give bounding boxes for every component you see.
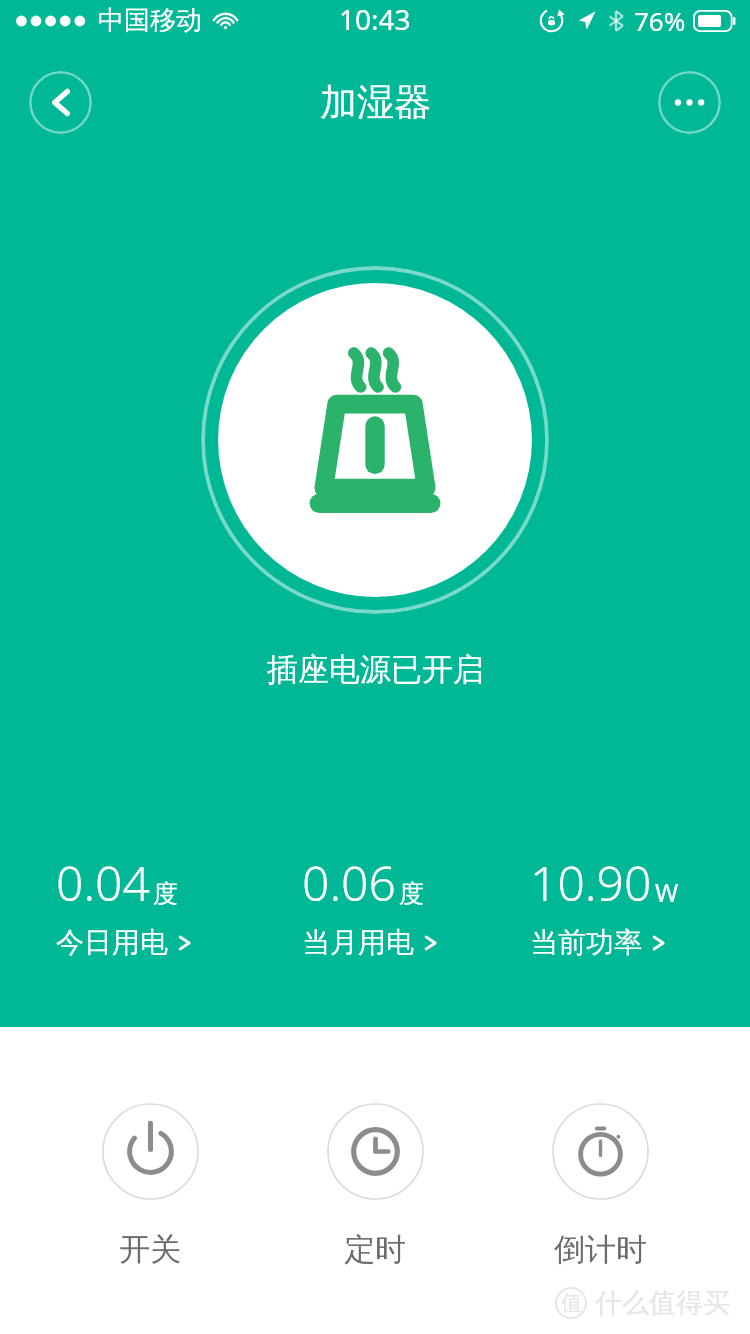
- staticText: W: [655, 875, 679, 909]
- staticText: 倒计时: [554, 1230, 647, 1269]
- button[interactable]: Humidifier power toggle: [201, 266, 549, 614]
- button[interactable]: Back: [29, 71, 92, 134]
- staticText: 10.90: [530, 850, 652, 915]
- staticText: 0.04: [56, 850, 150, 915]
- staticText: 定时: [344, 1230, 406, 1269]
- button[interactable]: 0.06: [250, 850, 500, 960]
- button[interactable]: More options: [658, 71, 721, 134]
- staticText: 0.06: [302, 850, 396, 915]
- button[interactable]: 10.90: [500, 850, 750, 960]
- staticText: 开关: [119, 1230, 181, 1269]
- staticText: 值: [561, 1290, 582, 1316]
- button[interactable]: 0.04: [0, 850, 250, 960]
- staticText: 加湿器: [320, 79, 431, 126]
- staticText: 度: [399, 878, 424, 909]
- staticText: 76%: [634, 3, 686, 38]
- staticText: 10:43: [339, 0, 411, 38]
- staticText: 当月用电: [302, 925, 414, 960]
- staticText: 今日用电: [56, 925, 168, 960]
- staticText: 什么值得买: [595, 1286, 730, 1320]
- button[interactable]: Power: [75, 1103, 225, 1269]
- staticText: 度: [153, 878, 178, 909]
- staticText: 插座电源已开启: [267, 650, 484, 689]
- button[interactable]: Schedule: [300, 1103, 450, 1269]
- staticText: 中国移动: [98, 4, 202, 37]
- staticText: 当前功率: [530, 925, 642, 960]
- button[interactable]: Countdown timer: [525, 1103, 675, 1269]
